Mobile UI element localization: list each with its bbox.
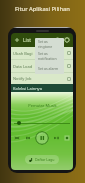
- staticText: Ubah Bagi: [13, 51, 33, 56]
- button[interactable]: Shuffle: [13, 134, 21, 142]
- button[interactable]: Ubah Bagi: [11, 47, 73, 59]
- staticText: List: [23, 37, 32, 44]
- button[interactable]: Set as notification: [35, 50, 64, 62]
- staticText: Fitur Aplikasi Pilihan: [15, 5, 70, 13]
- button[interactable]: Notify Job: [11, 73, 73, 84]
- staticText: Set as ringtone: [38, 39, 61, 49]
- button[interactable]: Pause: [35, 131, 49, 145]
- button[interactable]: Search: [54, 36, 62, 44]
- button[interactable]: Previous: [24, 134, 32, 142]
- staticText: Notify Job: [13, 76, 32, 81]
- staticText: Koleksi Lainnya: [13, 86, 42, 91]
- button[interactable]: Playlist: [63, 134, 71, 142]
- staticText: Data Load: [13, 64, 33, 69]
- button[interactable]: Set as alarm: [35, 62, 64, 74]
- button[interactable]: Daftar Lagu: [25, 155, 59, 164]
- button[interactable]: Set as ringtone: [35, 38, 64, 50]
- button[interactable]: Koleksi Lainnya: [11, 84, 73, 92]
- staticText: Pemutar Musik: [28, 103, 57, 108]
- staticText: Set as notification: [38, 51, 61, 61]
- staticText: Daftar Lagu: [35, 157, 55, 162]
- button[interactable]: Data Load: [11, 60, 73, 72]
- staticText: Set as alarm: [38, 66, 59, 71]
- button[interactable]: Next: [52, 134, 60, 142]
- button[interactable]: Add: [13, 36, 21, 44]
- button[interactable]: Settings: [63, 36, 71, 44]
